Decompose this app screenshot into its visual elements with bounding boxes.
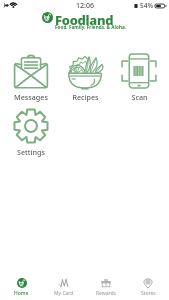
button[interactable]: Messages xyxy=(3,53,58,102)
button[interactable]: Rewards xyxy=(85,278,127,297)
button[interactable]: Recipes xyxy=(58,53,112,102)
button[interactable]: My Card xyxy=(43,278,85,297)
staticText: Rewards xyxy=(96,290,117,297)
staticText: Food. Family. Friends. & Aloha. xyxy=(55,24,127,30)
button[interactable]: Settings xyxy=(3,108,58,157)
staticText: Messages xyxy=(14,92,48,102)
staticText: My Card xyxy=(54,290,74,297)
staticText: Foodland xyxy=(55,11,114,29)
staticText: Recipes xyxy=(72,92,99,102)
button[interactable]: Scan xyxy=(112,53,166,102)
staticText: 12:06 xyxy=(76,1,94,11)
staticText: Home xyxy=(14,290,29,297)
staticText: Settings xyxy=(17,147,45,157)
staticText: 54% xyxy=(140,1,153,10)
staticText: Stores xyxy=(141,290,156,297)
button[interactable]: Stores xyxy=(127,278,169,297)
staticText: Scan xyxy=(131,92,148,102)
button[interactable]: Home xyxy=(0,278,43,297)
